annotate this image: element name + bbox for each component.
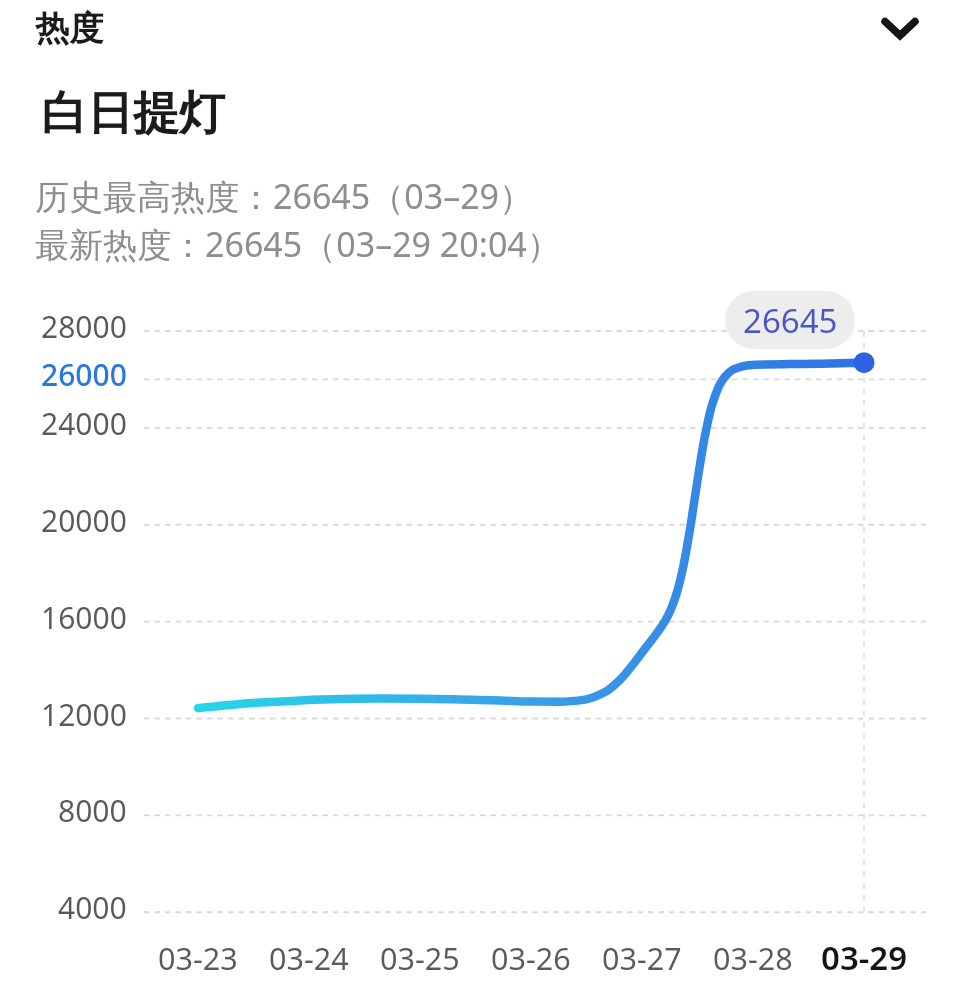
staticText: 12000 bbox=[41, 694, 127, 734]
staticText: 03-26 bbox=[491, 937, 571, 979]
staticText: 03-28 bbox=[713, 937, 793, 979]
staticText: 03-23 bbox=[158, 937, 238, 979]
staticText: 28000 bbox=[41, 306, 127, 346]
button[interactable]: Collapse bbox=[862, 0, 938, 56]
staticText: 03-29 bbox=[821, 935, 908, 980]
staticText: 4000 bbox=[58, 887, 127, 927]
button[interactable]: 热度 bbox=[0, 0, 960, 60]
staticText: 8000 bbox=[58, 790, 127, 830]
staticText: 03-24 bbox=[269, 937, 349, 979]
staticText: 最新热度：26645（03–29 20:04） bbox=[35, 221, 561, 267]
staticText: 热度 bbox=[35, 7, 103, 50]
staticText: 20000 bbox=[41, 500, 127, 540]
staticText: 03-27 bbox=[602, 937, 682, 979]
staticText: 26000 bbox=[41, 354, 127, 394]
staticText: 16000 bbox=[41, 597, 127, 637]
staticText: 24000 bbox=[41, 403, 127, 443]
staticText: 历史最高热度：26645（03–29） bbox=[35, 173, 534, 219]
staticText: 26645 bbox=[743, 298, 838, 343]
staticText: 白日提灯 bbox=[41, 85, 225, 143]
staticText: 03-25 bbox=[380, 937, 460, 979]
